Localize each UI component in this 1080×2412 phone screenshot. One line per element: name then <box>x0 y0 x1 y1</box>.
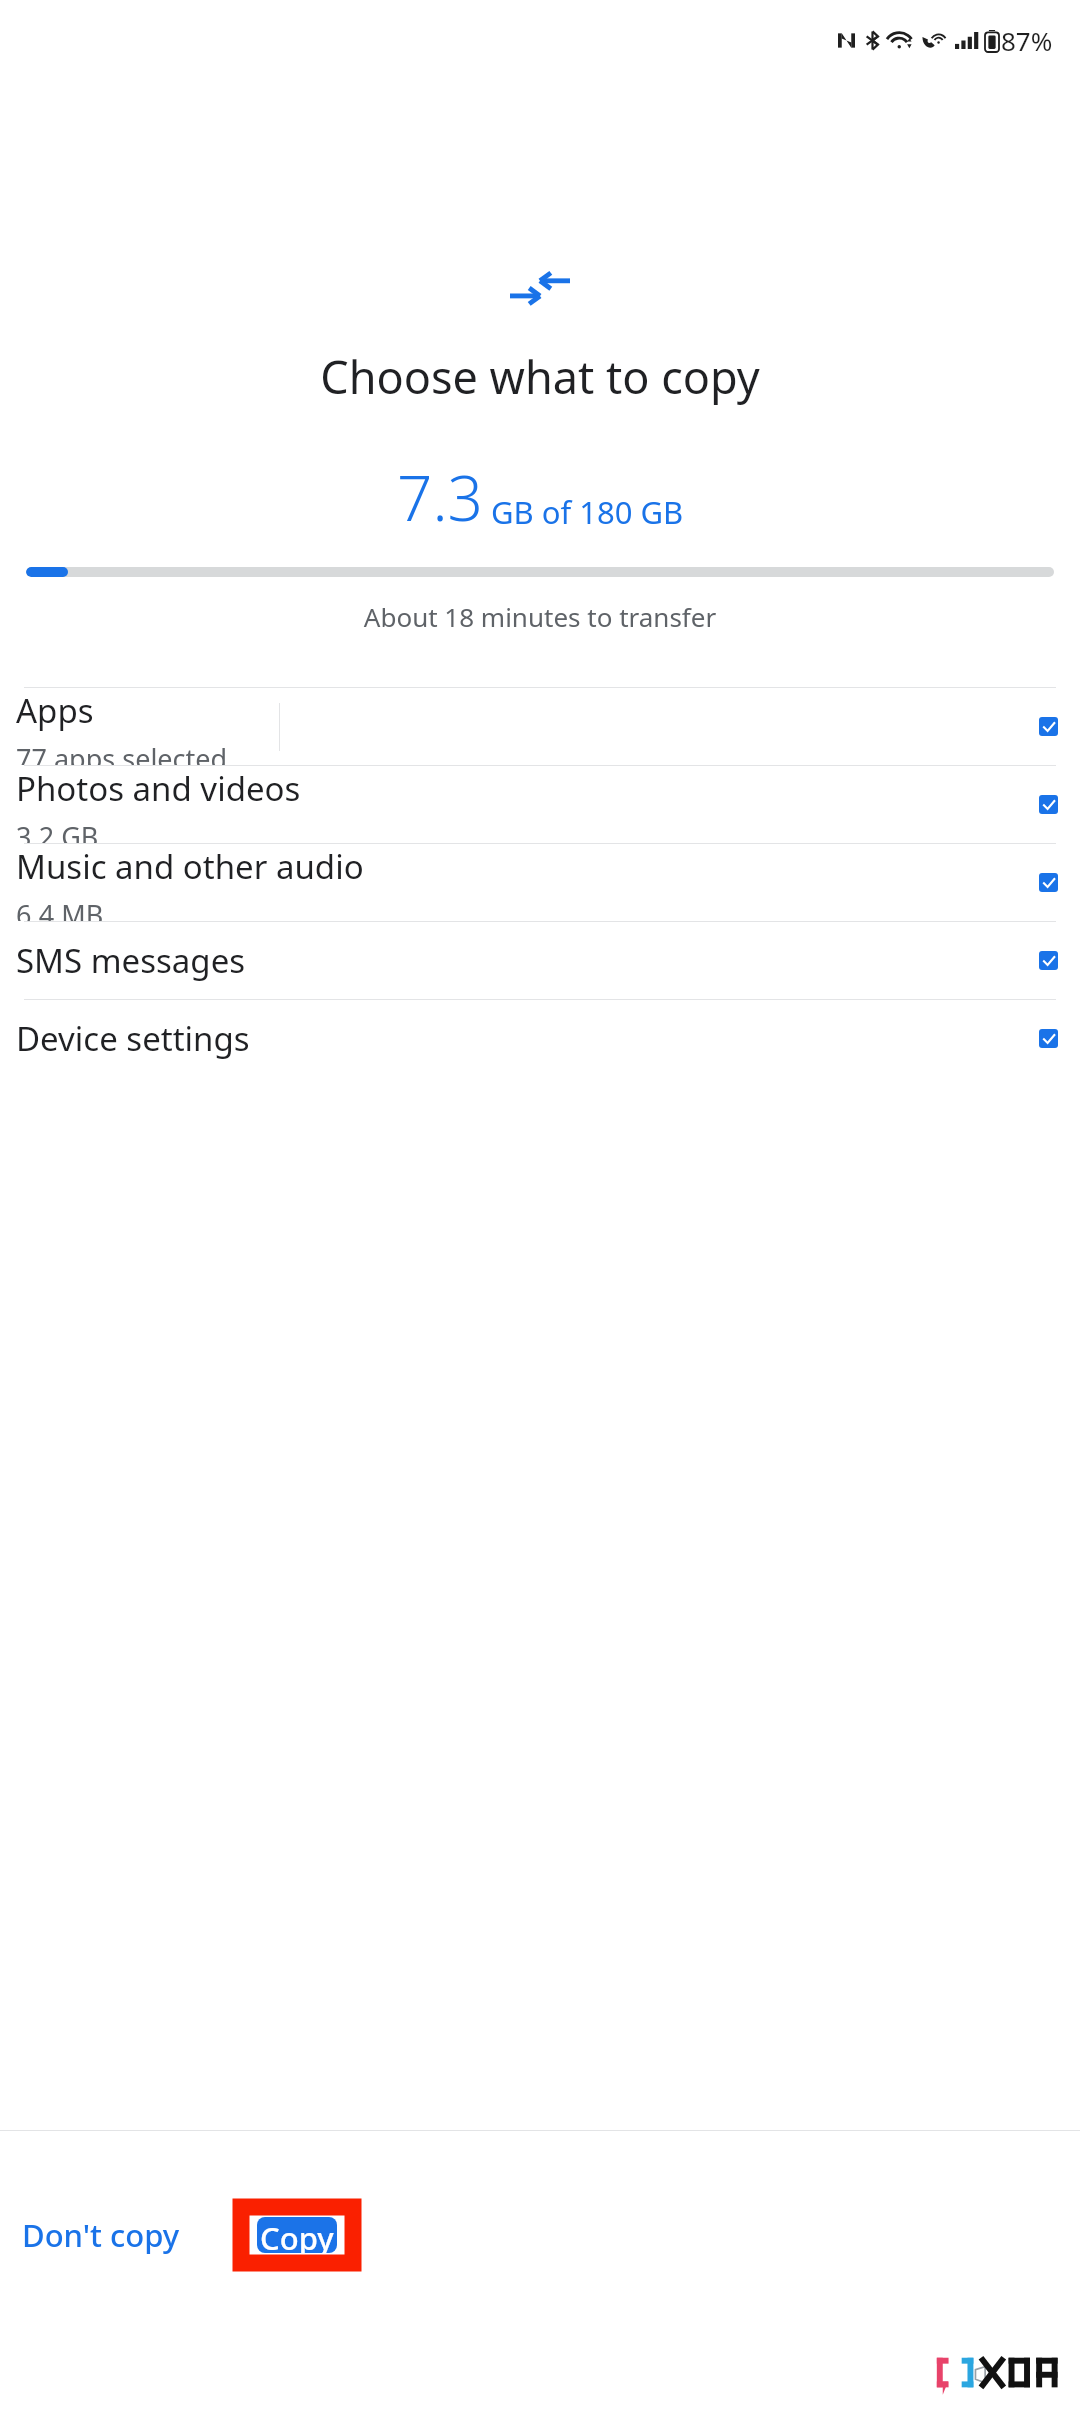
button[interactable]: SMS messages checkbox <box>1039 951 1058 970</box>
staticText: Device settings <box>16 1016 250 1061</box>
button[interactable]: Device settings checkbox <box>1039 1029 1058 1048</box>
staticText: Music and other audio <box>16 844 364 889</box>
staticText: 87% <box>1001 23 1053 58</box>
staticText: GB of 180 GB <box>491 491 684 533</box>
staticText: About 18 minutes to transfer <box>0 599 1080 634</box>
staticText: Copy <box>260 2217 334 2253</box>
staticText: 77 apps selected <box>16 740 228 765</box>
button[interactable]: Don't copy <box>10 2200 192 2270</box>
other: Transfer <box>510 270 570 306</box>
staticText: Choose what to copy <box>0 346 1080 407</box>
button[interactable]: Photos and videos <box>0 766 1080 843</box>
staticText: 7.3 <box>397 455 483 539</box>
button[interactable]: Apps <box>0 688 1080 765</box>
button[interactable]: Copy <box>257 2217 337 2253</box>
button[interactable]: Apps checkbox <box>1039 717 1058 736</box>
staticText: SMS messages <box>16 938 246 983</box>
staticText: Apps <box>16 688 94 733</box>
button[interactable]: Device settings <box>0 1000 1080 1077</box>
staticText: Photos and videos <box>16 766 301 811</box>
button[interactable]: Photos and videos checkbox <box>1039 795 1058 814</box>
button[interactable]: Music and other audio checkbox <box>1039 873 1058 892</box>
button[interactable]: SMS messages <box>0 922 1080 999</box>
button[interactable]: Music and other audio <box>0 844 1080 921</box>
staticText: 3.2 GB <box>16 818 99 843</box>
staticText: 6.4 MB <box>16 896 104 921</box>
